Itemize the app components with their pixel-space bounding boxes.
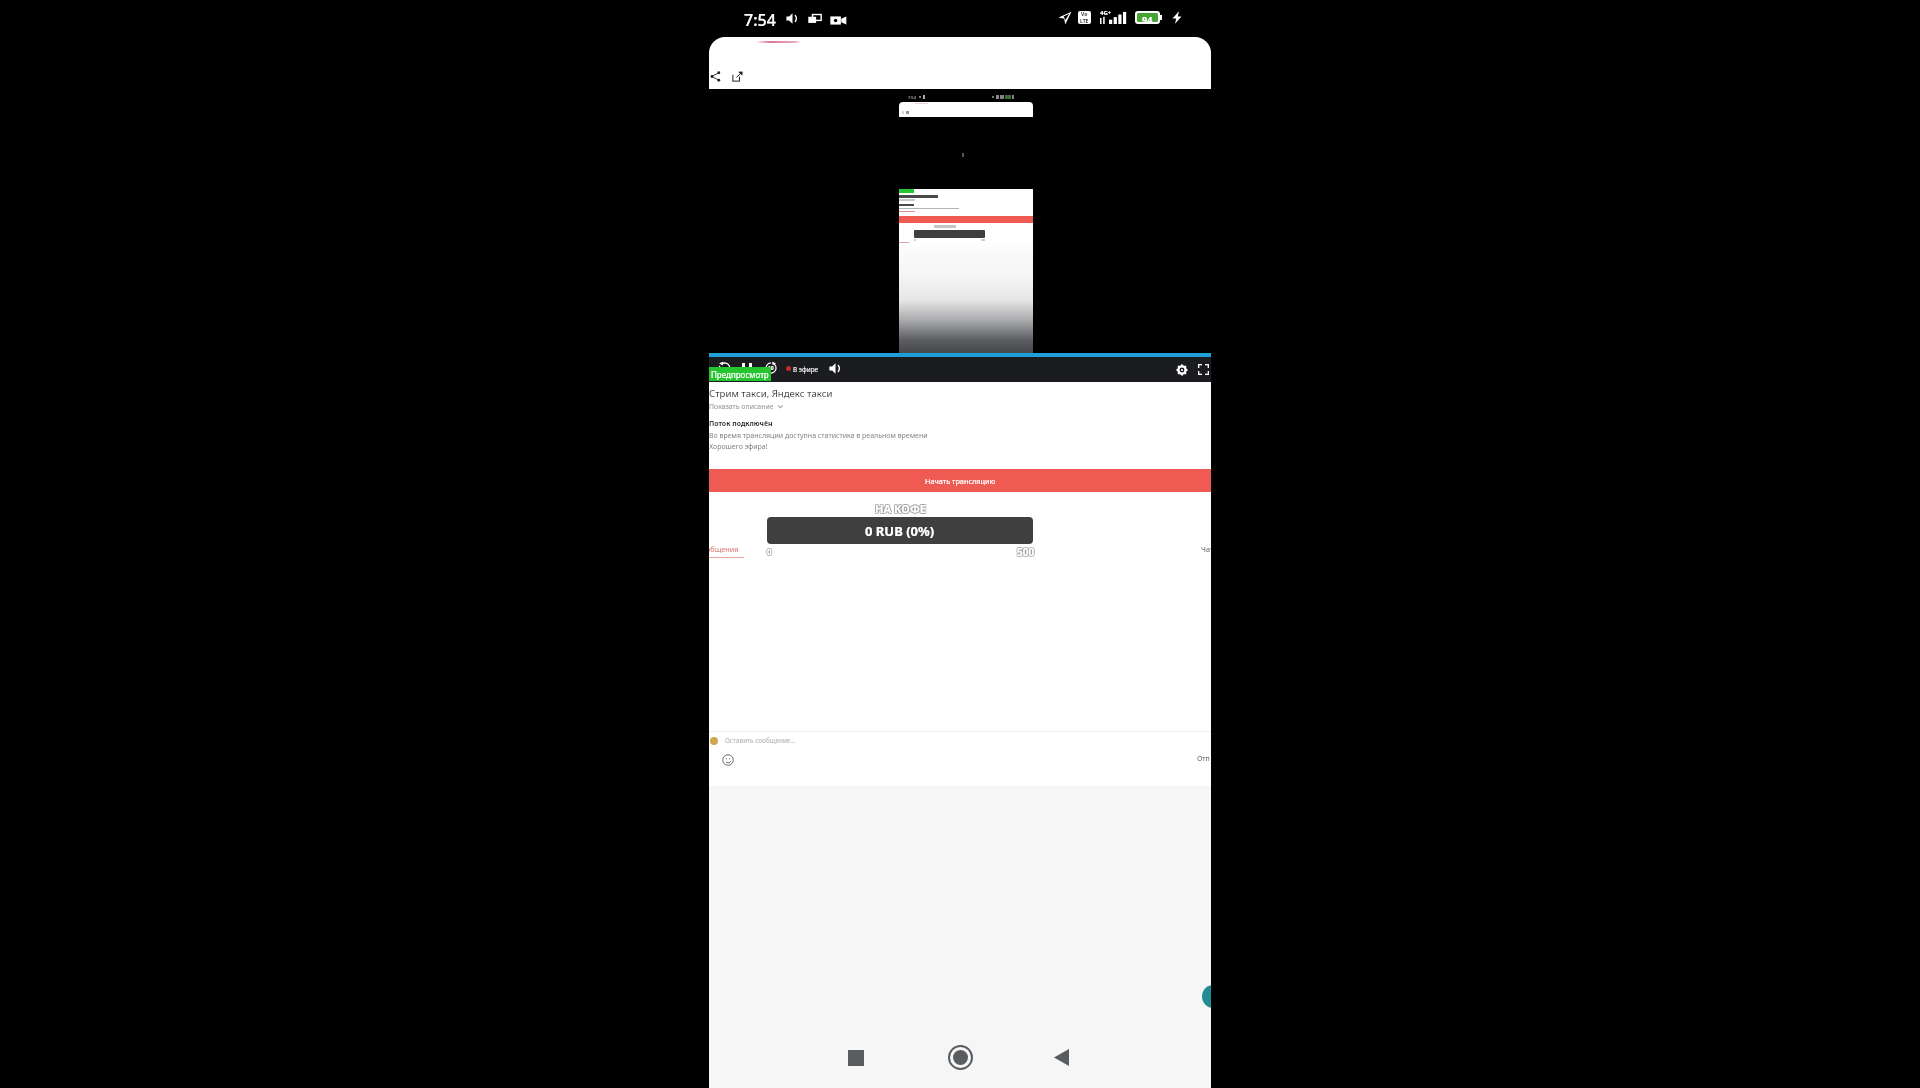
staticText: 7:54: [908, 95, 916, 100]
staticText: 7:54: [744, 9, 776, 31]
staticText: 0: [767, 547, 772, 558]
staticText: 0: [768, 545, 773, 556]
staticText: НА КОФЕ: [874, 501, 925, 516]
button[interactable]: Fullscreen: [1195, 361, 1211, 378]
button[interactable]: Open in new window: [727, 66, 747, 86]
button[interactable]: Pause: [738, 359, 756, 377]
staticText: 500: [1017, 545, 1035, 559]
button[interactable]: Отп: [1195, 752, 1211, 766]
staticText: Оставить сообщение...: [725, 736, 796, 745]
staticText: 0: [766, 546, 771, 557]
button[interactable]: Сообщения: [709, 537, 757, 558]
staticText: 94: [1142, 13, 1153, 22]
staticText: НА КОФЕ: [876, 502, 927, 517]
button[interactable]: Forward 10 seconds: [763, 360, 779, 376]
button[interactable]: Чат: [1195, 538, 1211, 557]
button[interactable]: Показать описание: [709, 402, 784, 411]
staticText: Поток подключён: [709, 419, 773, 428]
button[interactable]: Mute: [827, 360, 844, 377]
staticText: 0 RUB (0%): [865, 522, 935, 540]
staticText: В эфире: [793, 365, 819, 374]
button[interactable]: Оставить сообщение...: [709, 732, 1211, 749]
button[interactable]: Settings: [1173, 361, 1190, 378]
staticText: Во время трансляции доступна статистика …: [709, 431, 928, 441]
button[interactable]: Back: [1046, 1042, 1077, 1073]
staticText: 0: [768, 547, 773, 558]
staticText: Отп: [1197, 754, 1210, 764]
staticText: НА КОФЕ: [875, 500, 926, 515]
button[interactable]: Rewind 10 seconds: [715, 359, 733, 377]
staticText: НА КОФЕ: [876, 500, 927, 515]
staticText: 0: [768, 546, 773, 557]
staticText: Vo: [1081, 11, 1088, 18]
staticText: 500: [1016, 546, 1034, 560]
staticText: НА КОФЕ: [874, 502, 925, 517]
button[interactable]: Share: [709, 66, 725, 86]
button[interactable]: Recents: [709, 1028, 1211, 1088]
staticText: Хорошего эфира!: [709, 442, 768, 452]
staticText: НА КОФЕ: [875, 502, 926, 517]
staticText: 500: [1016, 544, 1034, 558]
button[interactable]: Emoji: [721, 753, 735, 767]
staticText: 500: [1018, 546, 1036, 560]
staticText: 500: [1016, 545, 1034, 559]
button[interactable]: Screen recorder: [1202, 985, 1211, 1008]
button[interactable]: Начать трансляцию: [709, 469, 1211, 492]
staticText: Начать трансляцию: [925, 476, 996, 486]
staticText: Сообщения: [709, 544, 739, 554]
staticText: 500: [1017, 544, 1035, 558]
staticText: 4G+: [1100, 9, 1112, 17]
staticText: 0: [767, 546, 772, 557]
staticText: 10: [768, 365, 774, 372]
staticText: 0: [766, 545, 771, 556]
staticText: НА КОФЕ: [876, 501, 927, 516]
staticText: НА КОФЕ: [875, 501, 926, 516]
staticText: 0: [766, 547, 771, 558]
staticText: Показать описание: [709, 402, 774, 411]
staticText: Стрим такси, Яндекс такси: [709, 387, 833, 400]
staticText: Предпросмотр: [711, 369, 769, 380]
staticText: Чат: [1201, 544, 1211, 554]
staticText: LTE: [1080, 18, 1089, 24]
button[interactable]: Home: [945, 1042, 976, 1073]
staticText: 500: [1018, 544, 1036, 558]
staticText: 500: [1017, 546, 1035, 560]
staticText: 500: [1018, 545, 1036, 559]
staticText: НА КОФЕ: [874, 500, 925, 515]
staticText: 0: [767, 545, 772, 556]
